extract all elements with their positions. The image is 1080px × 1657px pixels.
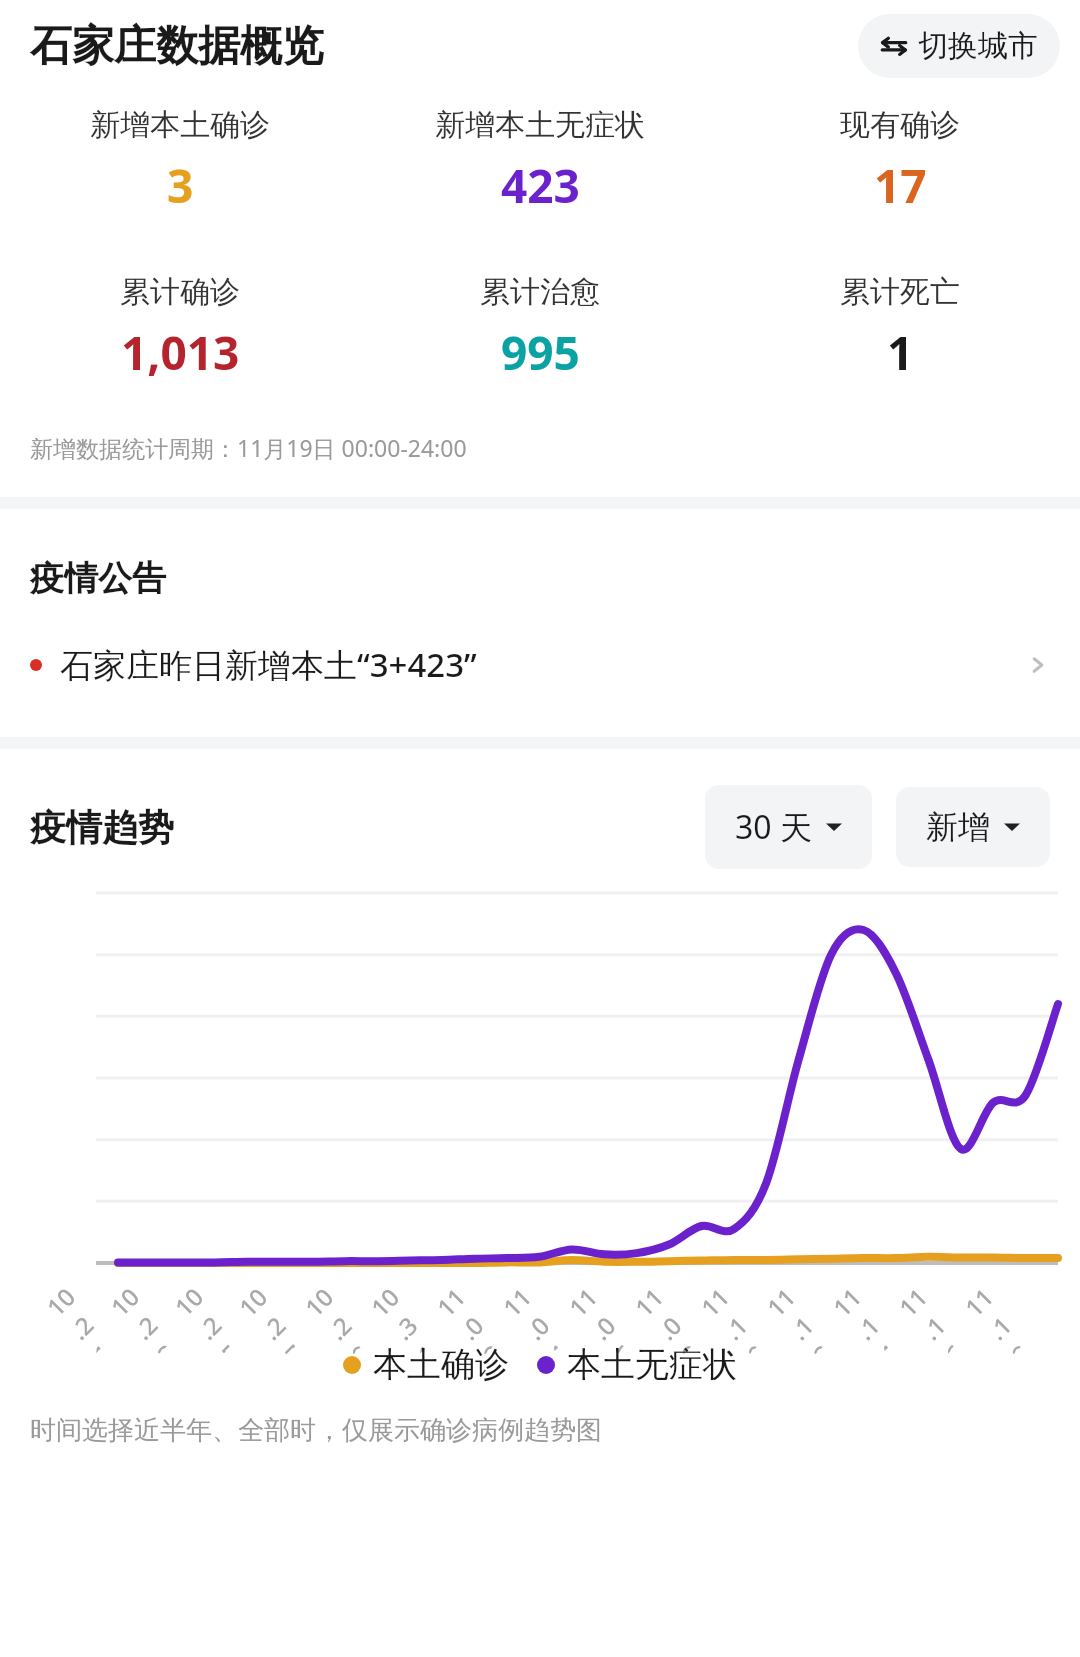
staticText: 11.02	[429, 1277, 508, 1355]
staticText: 10.21	[39, 1277, 117, 1355]
staticText: 新增	[926, 807, 990, 847]
staticText: 时间选择近半年、全部时，仅展示确诊病例趋势图	[30, 1414, 602, 1447]
button[interactable]: 新增本土无症状	[360, 106, 720, 217]
staticText: 1	[887, 321, 914, 384]
staticText: 石家庄数据概览	[30, 20, 324, 73]
staticText: 11.16	[891, 1277, 970, 1355]
staticText: 3	[167, 154, 194, 217]
staticText: 11.04	[495, 1277, 574, 1355]
staticText: 423	[501, 154, 580, 217]
staticText: 17	[874, 154, 927, 217]
staticText: 累计确诊	[120, 273, 240, 311]
staticText: 疫情趋势	[30, 805, 174, 850]
staticText: 1,013	[121, 321, 240, 384]
staticText: 新增数据统计周期：11月19日 00:00-24:00	[30, 432, 467, 463]
staticText: 10.23	[103, 1277, 181, 1355]
staticText: 现有确诊	[840, 106, 960, 144]
staticText: 石家庄昨日新增本土“3+423”	[60, 642, 1026, 687]
staticText: 11.14	[825, 1277, 904, 1355]
button[interactable]: 累计死亡	[720, 273, 1080, 384]
staticText: 10.29	[297, 1277, 376, 1355]
button[interactable]: 本土无症状	[537, 1343, 737, 1386]
staticText: 10.27	[231, 1277, 310, 1355]
staticText: 本土无症状	[567, 1343, 737, 1386]
button[interactable]: 累计治愈	[360, 273, 720, 384]
staticText: 新增本土确诊	[90, 106, 270, 144]
button[interactable]: 30 天	[705, 785, 872, 869]
button[interactable]: 本土确诊	[343, 1343, 509, 1386]
staticText: 10.25	[167, 1277, 245, 1355]
staticText: 11.18	[957, 1277, 1036, 1355]
staticText: 累计治愈	[480, 273, 600, 311]
staticText: 11.08	[627, 1277, 706, 1355]
staticText: 30 天	[735, 805, 812, 849]
button[interactable]: 现有确诊	[720, 106, 1080, 217]
button[interactable]: 新增	[896, 787, 1050, 867]
staticText: 疫情公告	[30, 557, 166, 600]
staticText: 11.12	[759, 1277, 838, 1355]
staticText: 11.10	[693, 1277, 772, 1355]
staticText: 995	[501, 321, 580, 384]
staticText: 10.31	[363, 1277, 442, 1355]
button[interactable]: 切换城市	[858, 14, 1060, 78]
staticText: 新增本土无症状	[435, 106, 645, 144]
button[interactable]: 新增本土确诊	[0, 106, 360, 217]
button[interactable]: 累计确诊	[0, 273, 360, 384]
staticText: 累计死亡	[840, 273, 960, 311]
staticText: 本土确诊	[373, 1343, 509, 1386]
staticText: 11.06	[561, 1277, 640, 1355]
staticText: 切换城市	[918, 27, 1038, 65]
button[interactable]: 石家庄昨日新增本土“3+423”	[0, 634, 1080, 695]
